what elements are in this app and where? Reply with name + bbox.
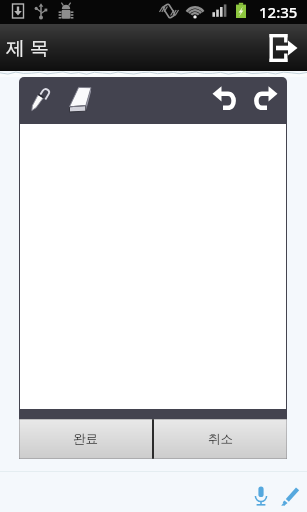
staticText: 12:35 (259, 2, 298, 22)
button[interactable]: Eraser (62, 84, 94, 116)
button[interactable]: 취소 (154, 419, 287, 459)
button[interactable]: 완료 (19, 419, 152, 459)
staticText: 제 목 (6, 35, 49, 61)
staticText: 취소 (208, 431, 233, 447)
button[interactable]: Exit (260, 26, 304, 70)
button[interactable]: Pen (23, 83, 55, 115)
staticText: 완료 (73, 431, 98, 447)
button[interactable]: Voice input (250, 485, 272, 507)
button[interactable]: Undo (209, 83, 241, 115)
button[interactable]: Handwriting input (279, 485, 301, 507)
button[interactable]: Redo (249, 83, 281, 115)
